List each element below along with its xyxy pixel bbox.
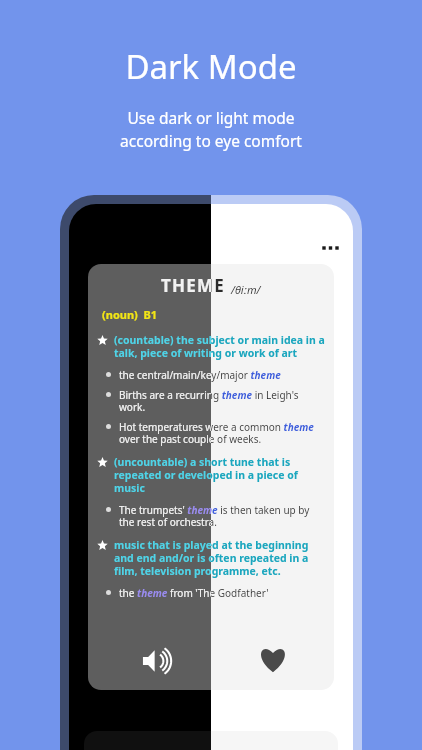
staticText: Hot temperatures were a common theme ove… <box>119 420 324 446</box>
button[interactable]: Hot temperatures were a common theme ove… <box>104 420 324 446</box>
button[interactable]: Play pronunciation <box>128 640 180 692</box>
staticText: /θiːm/ <box>231 282 261 297</box>
button[interactable]: (uncountable) a short tune that is repea… <box>96 455 326 495</box>
staticText: (countable) the subject or main idea in … <box>114 333 326 360</box>
staticText: Use dark or light mode according to eye … <box>120 107 302 152</box>
staticText: Hot temperatures were a common theme ove… <box>119 420 324 446</box>
staticText: the theme from 'The Godfather' <box>119 586 269 600</box>
button[interactable]: the central/main/key/major theme <box>104 368 324 382</box>
button[interactable]: (countable) the subject or main idea in … <box>96 333 326 360</box>
button[interactable]: The trumpets' theme is then taken up by … <box>104 503 324 529</box>
staticText: Dark Mode <box>125 44 297 89</box>
staticText: (noun) B1 <box>102 307 158 322</box>
staticText: the central/main/key/major theme <box>119 368 281 382</box>
staticText: music that is played at the beginning an… <box>114 538 326 578</box>
staticText: THEME <box>161 274 225 297</box>
staticText: THEME <box>161 274 225 297</box>
staticText: Births are a recurring theme in Leigh's … <box>119 388 324 414</box>
button[interactable]: music that is played at the beginning an… <box>96 538 326 578</box>
button[interactable]: (uncountable) a short tune that is repea… <box>96 455 326 495</box>
button[interactable]: Births are a recurring theme in Leigh's … <box>104 388 324 414</box>
button[interactable]: the theme from 'The Godfather' <box>104 586 324 600</box>
staticText: /θiːm/ <box>231 282 261 297</box>
button[interactable]: More options <box>316 236 346 266</box>
staticText: music that is played at the beginning an… <box>114 538 326 578</box>
button[interactable]: The trumpets' theme is then taken up by … <box>104 503 324 529</box>
button[interactable]: Hot temperatures were a common theme ove… <box>104 420 324 446</box>
button[interactable]: Births are a recurring theme in Leigh's … <box>104 388 324 414</box>
button[interactable]: (countable) the subject or main idea in … <box>96 333 326 360</box>
staticText: (countable) the subject or main idea in … <box>114 333 326 360</box>
staticText: The trumpets' theme is then taken up by … <box>119 503 324 529</box>
staticText: Births are a recurring theme in Leigh's … <box>119 388 324 414</box>
button[interactable]: music that is played at the beginning an… <box>96 538 326 578</box>
staticText: (uncountable) a short tune that is repea… <box>114 455 326 495</box>
button[interactable]: Add to favourites <box>247 640 299 692</box>
staticText: (uncountable) a short tune that is repea… <box>114 455 326 495</box>
staticText: (noun) B1 <box>102 307 158 322</box>
button[interactable]: the central/main/key/major theme <box>104 368 324 382</box>
staticText: The trumpets' theme is then taken up by … <box>119 503 324 529</box>
staticText: the theme from 'The Godfather' <box>119 586 269 600</box>
button[interactable]: the theme from 'The Godfather' <box>104 586 324 600</box>
staticText: the central/main/key/major theme <box>119 368 281 382</box>
